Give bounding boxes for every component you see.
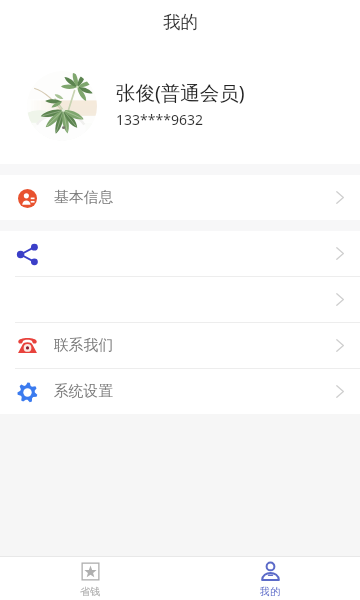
button[interactable]: 联系我们 [0,323,360,368]
button[interactable]: 张俊(普通会员) [0,55,360,155]
staticText: 我的 [260,585,280,598]
button[interactable]: 分享 [0,231,360,276]
button[interactable]: 省钱 [0,557,180,600]
staticText: 133****9632 [116,110,203,129]
other: Share [16,243,39,266]
staticText: 基本信息 [54,188,114,207]
staticText: 省钱 [80,585,100,598]
staticText: 系统设置 [54,382,114,401]
button[interactable]: 我的 [180,557,360,600]
staticText: 张俊(普通会员) [116,79,245,106]
staticText: 我的 [163,11,198,33]
button[interactable]: 基本信息 [0,175,360,220]
staticText: 联系我们 [54,336,114,355]
button[interactable]: 系统设置 [0,369,360,414]
